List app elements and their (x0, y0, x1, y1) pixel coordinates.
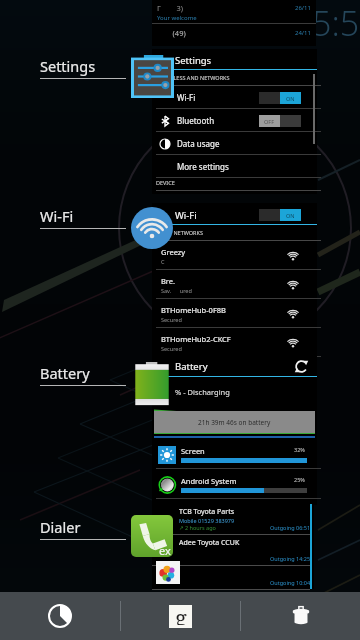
button[interactable]: Bre. (152, 270, 317, 299)
staticText: (49) (157, 28, 186, 38)
staticText: Bluetooth (177, 115, 215, 126)
button[interactable]: Battery (40, 363, 126, 391)
button[interactable]: Dialer (40, 517, 126, 545)
staticText: 25% (294, 476, 305, 483)
staticText: More settings (177, 161, 229, 172)
staticText: ex (159, 543, 171, 557)
button[interactable]: Dialer app (131, 515, 173, 557)
staticText: Wi-Fi (40, 206, 74, 226)
staticText: Outgoing 14:25 (270, 555, 311, 562)
staticText: ON (286, 95, 295, 102)
button[interactable]: TCB Toyota Parts (152, 504, 314, 535)
button[interactable]: Settings (40, 56, 126, 84)
button[interactable]: Data usage (152, 132, 317, 155)
staticText: Settings (175, 54, 212, 67)
staticText: Screen (181, 446, 205, 456)
staticText: Bre. (161, 276, 176, 286)
staticText: BTHomeHub-0F8B (161, 305, 226, 315)
staticText: 5:56 (312, 0, 360, 46)
button[interactable]: TCB Toyota Parts (152, 504, 314, 589)
staticText: BTHomeHub2-CKCF (161, 334, 231, 344)
button[interactable]: Screen (152, 440, 317, 469)
staticText: Dialer (40, 517, 81, 537)
staticText: C (161, 258, 165, 265)
staticText: DEVICE (156, 179, 175, 186)
staticText: Г 3) (157, 3, 183, 13)
button[interactable]: Recents (0, 592, 120, 640)
button[interactable]: Delete (241, 592, 360, 640)
staticText: TCB Toyota Parts (179, 507, 235, 517)
button[interactable]: Wi-Fi app (131, 207, 173, 249)
button[interactable]: Г 3) (152, 0, 316, 46)
button[interactable]: Settings (152, 49, 317, 194)
button[interactable]: BTHomeHub2-CKCF (152, 328, 317, 357)
button[interactable]: Settings app (131, 55, 174, 98)
button[interactable]: Wi-Fi (40, 206, 126, 234)
staticText: Secured (161, 316, 182, 323)
button[interactable]: Wi-Fi (152, 203, 317, 356)
staticText: Settings (40, 56, 96, 76)
staticText: % - Discharging (175, 387, 230, 397)
staticText: ↗ 2 hours ago (179, 524, 216, 531)
button[interactable]: Outgoing 10:04 (152, 559, 314, 590)
staticText: Mobile 01529 383979 (179, 517, 235, 524)
button[interactable]: Battery app (133, 362, 171, 406)
staticText: 24/11 (295, 29, 311, 37)
button[interactable]: Battery (152, 355, 317, 505)
staticText: 21h 39m 46s on battery (198, 418, 271, 427)
staticText: Data usage (177, 138, 220, 149)
staticText: Outgoing 10:04 (270, 579, 311, 586)
staticText: Battery (40, 363, 90, 383)
button[interactable]: More settings (152, 155, 317, 178)
button[interactable]: Bluetooth (152, 109, 317, 132)
staticText: Outgoing 06:51 (270, 524, 311, 531)
staticText: WIRELESS AND NETWORKS (160, 74, 230, 81)
staticText: Wi-Fi (177, 92, 196, 103)
button[interactable]: Wi-Fi (152, 86, 317, 109)
button[interactable]: Search (121, 592, 240, 640)
button[interactable]: Greezy (152, 241, 317, 270)
staticText: Greezy (161, 247, 186, 257)
staticText: Secured (161, 345, 182, 352)
staticText: Sav. ured (161, 287, 192, 294)
staticText: ON (286, 212, 295, 219)
button[interactable] (156, 561, 180, 584)
staticText: Your welcome (157, 14, 197, 22)
staticText: NETWORKS (172, 229, 203, 236)
other: Refresh (294, 359, 309, 374)
button[interactable]: BTHomeHub-0F8B (152, 299, 317, 328)
button[interactable]: Adee Toyota CCUK (152, 535, 314, 566)
staticText: 26/11 (295, 4, 311, 12)
staticText: Battery (175, 360, 208, 373)
staticText: Android System (181, 476, 237, 486)
staticText: Wi-Fi (175, 209, 197, 222)
staticText: OFF (264, 118, 275, 125)
staticText: Adee Toyota CCUK (179, 538, 240, 548)
staticText: g (175, 602, 187, 625)
staticText: 32% (294, 446, 305, 453)
button[interactable]: Android System (152, 470, 317, 499)
